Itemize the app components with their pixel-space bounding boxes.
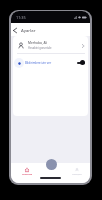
button[interactable]: Bildirimlere izin ver bbox=[13, 54, 88, 71]
staticText: Hesabim bbox=[72, 173, 82, 176]
staticText: Hesabini goruntule bbox=[28, 46, 52, 50]
button[interactable]: Merhaba, Ali bbox=[13, 38, 88, 53]
button[interactable]: Hesabim bbox=[69, 163, 85, 183]
staticText: Bildirimlere izin ver bbox=[25, 61, 52, 65]
button[interactable]: Add bbox=[46, 159, 57, 170]
button[interactable]: Back bbox=[11, 25, 19, 36]
button[interactable]: Anasayfa bbox=[19, 163, 35, 183]
staticText: Ayarlar bbox=[21, 28, 36, 34]
staticText: Anasayfa bbox=[22, 173, 33, 176]
staticText: Merhaba, Ali bbox=[28, 41, 48, 45]
button[interactable]: Toggle notifications bbox=[77, 60, 85, 65]
staticText: 11:35 bbox=[16, 15, 26, 20]
